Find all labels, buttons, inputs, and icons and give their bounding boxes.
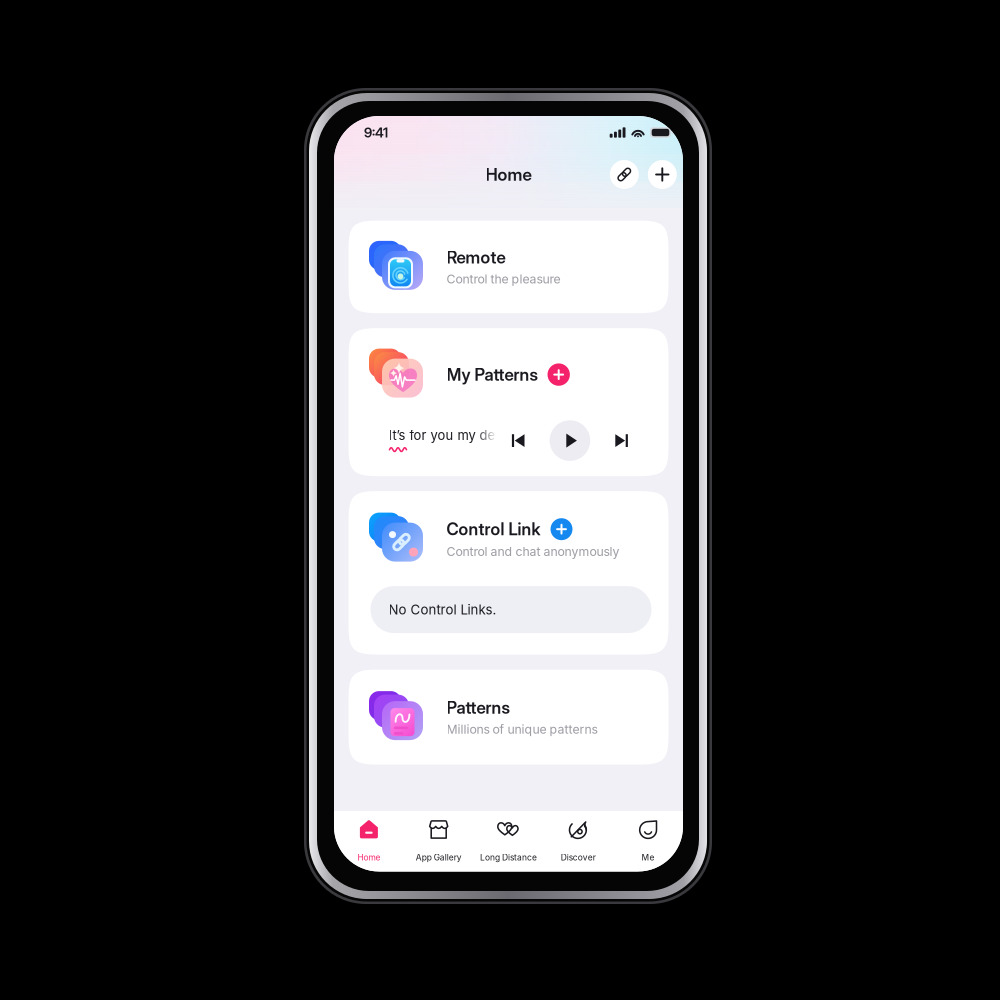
- button[interactable]: No Control Links.: [370, 586, 651, 633]
- staticText: 9:41: [364, 124, 388, 141]
- staticText: Control the pleasure: [446, 272, 560, 286]
- button[interactable]: Play: [550, 420, 590, 461]
- button[interactable]: App Gallery: [404, 811, 474, 871]
- button[interactable]: Control Link: [610, 160, 639, 189]
- button[interactable]: Patterns: [348, 670, 668, 765]
- button[interactable]: Discover: [543, 811, 613, 871]
- staticText: App Gallery: [416, 852, 462, 863]
- button[interactable]: Next: [607, 426, 637, 456]
- staticText: My Patterns: [446, 364, 537, 385]
- button[interactable]: Previous: [503, 426, 533, 456]
- staticText: Me: [642, 852, 655, 863]
- staticText: Control and chat anonymously: [446, 544, 619, 559]
- staticText: It’s for you my de: [388, 427, 495, 443]
- staticText: Control Link: [446, 519, 540, 539]
- staticText: Long Distance: [480, 852, 537, 863]
- button[interactable]: Long Distance: [474, 811, 543, 871]
- button[interactable]: Home: [334, 811, 404, 871]
- button[interactable]: Add: [648, 160, 677, 189]
- staticText: Home: [485, 164, 531, 185]
- staticText: Discover: [561, 852, 596, 863]
- button[interactable]: Remote: [348, 221, 668, 313]
- staticText: Remote: [446, 247, 505, 268]
- staticText: Patterns: [446, 697, 509, 718]
- staticText: Home: [357, 852, 380, 863]
- button[interactable]: Add control link: [550, 518, 572, 540]
- button[interactable]: Add pattern: [547, 363, 570, 386]
- staticText: No Control Links.: [388, 602, 496, 618]
- button[interactable]: Me: [613, 811, 683, 871]
- staticText: Millions of unique patterns: [446, 722, 597, 737]
